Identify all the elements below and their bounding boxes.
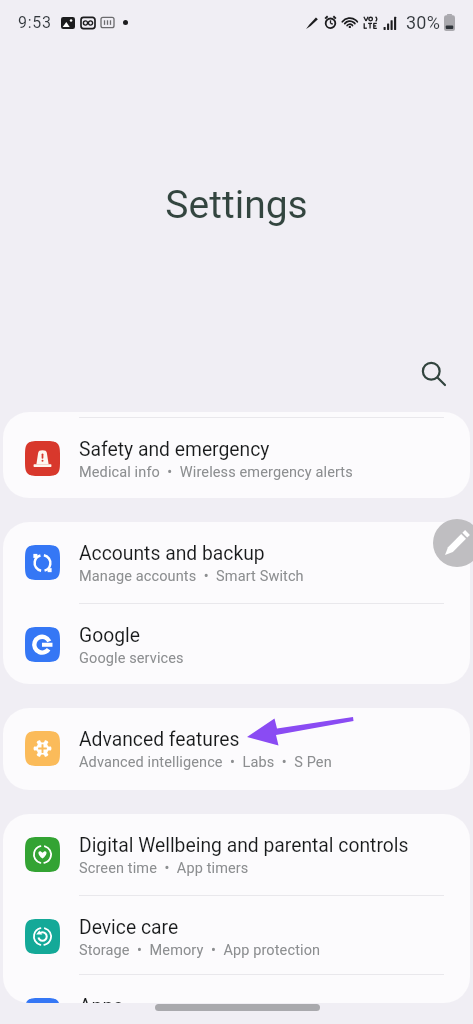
- staticText: Manage accounts • Smart Switch: [79, 568, 304, 585]
- button[interactable]: Edit: [433, 519, 473, 567]
- staticText: Digital Wellbeing and parental controls: [79, 834, 409, 857]
- staticText: Screen time • App timers: [79, 860, 249, 877]
- staticText: Advanced intelligence • Labs • S Pen: [79, 754, 332, 771]
- staticText: 30%: [406, 12, 441, 33]
- button[interactable]: Device care: [3, 896, 470, 976]
- button[interactable]: Digital Wellbeing and parental controls: [3, 814, 470, 895]
- staticText: Medical info • Wireless emergency alerts: [79, 464, 353, 481]
- staticText: Device care: [79, 916, 179, 939]
- staticText: Apps: [79, 995, 124, 1003]
- staticText: Accounts and backup: [79, 542, 265, 565]
- staticText: Google: [79, 624, 140, 647]
- button[interactable]: Apps: [3, 975, 470, 1003]
- staticText: Storage • Memory • App protection: [79, 942, 321, 959]
- button[interactable]: Advanced features: [3, 708, 470, 789]
- button[interactable]: Search: [411, 351, 455, 395]
- staticText: Advanced features: [79, 728, 240, 751]
- button[interactable]: Safety and emergency: [3, 418, 470, 498]
- staticText: 9:53: [18, 13, 52, 32]
- button[interactable]: Accounts and backup: [3, 522, 470, 603]
- button[interactable]: Google: [3, 604, 470, 684]
- staticText: Google services: [79, 650, 184, 667]
- staticText: Safety and emergency: [79, 438, 270, 461]
- staticText: Settings: [0, 182, 473, 228]
